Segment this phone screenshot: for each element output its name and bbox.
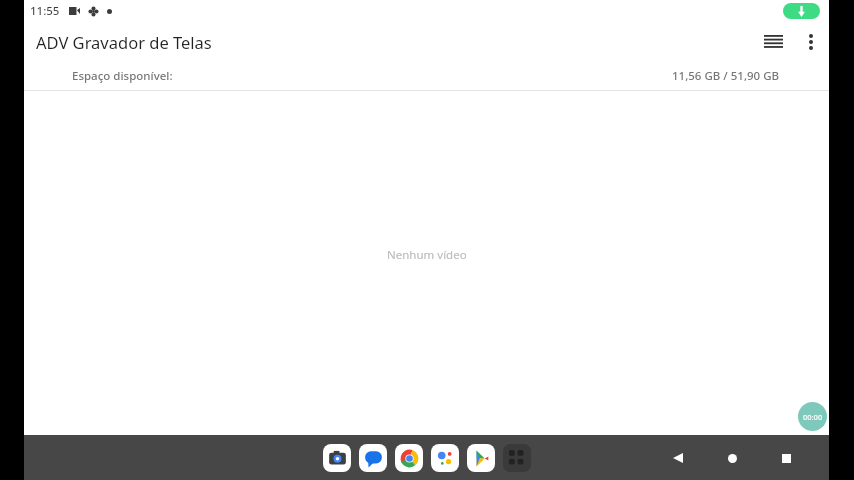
other: Download in progress <box>783 3 820 19</box>
staticText: Espaço disponível: <box>72 68 173 84</box>
staticText: 11:55 <box>30 3 60 19</box>
staticText: ADV Gravador de Telas <box>36 31 212 53</box>
button[interactable]: 00:00 <box>798 402 827 431</box>
button[interactable]: All apps <box>503 444 531 472</box>
button[interactable]: Assistant <box>431 444 459 472</box>
button[interactable]: Play Store <box>467 444 495 472</box>
button[interactable]: List view <box>753 22 793 62</box>
button[interactable]: More options <box>793 24 829 60</box>
button[interactable]: Messages <box>359 444 387 472</box>
button[interactable]: Back <box>663 443 693 473</box>
staticText: 11,56 GB / 51,90 GB <box>672 68 780 84</box>
staticText: 00:00 <box>803 412 823 422</box>
button[interactable]: Chrome <box>395 444 423 472</box>
staticText: Nenhum vídeo <box>387 247 467 263</box>
button[interactable]: Camera <box>323 444 351 472</box>
button[interactable]: Recent apps <box>771 443 801 473</box>
button[interactable]: Home <box>717 443 747 473</box>
